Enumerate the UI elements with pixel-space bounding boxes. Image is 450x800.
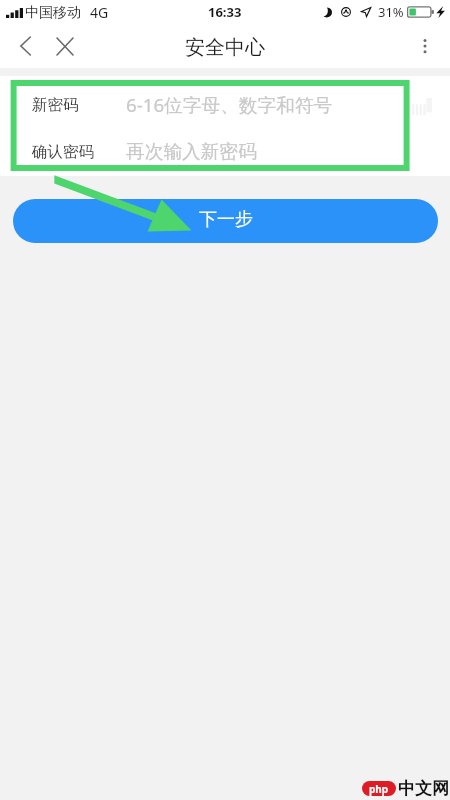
button[interactable]: 新密码 (0, 81, 450, 128)
button[interactable]: Back (9, 30, 41, 62)
button[interactable]: Close (50, 31, 80, 61)
staticText: 下一步 (199, 208, 253, 231)
staticText: 新密码 (32, 95, 79, 115)
staticText: 6-16位字母、数字和符号 (126, 92, 333, 118)
staticText: 确认密码 (32, 142, 94, 162)
staticText: 安全中心 (185, 35, 265, 60)
staticText: 中文网 (398, 778, 449, 799)
staticText: 16:33 (208, 3, 242, 21)
button[interactable]: 确认密码 (0, 128, 450, 175)
button[interactable]: More options (410, 31, 440, 61)
staticText: php (369, 782, 389, 796)
staticText: 4G (90, 3, 109, 22)
button[interactable]: 下一步 (13, 199, 438, 243)
staticText: 再次输入新密码 (126, 140, 257, 164)
staticText: 31% (378, 3, 404, 21)
staticText: 中国移动 (25, 4, 81, 22)
